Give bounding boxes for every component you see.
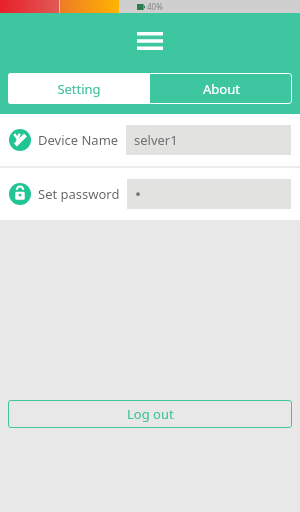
staticText: Device Name <box>38 131 119 149</box>
button[interactable]: Log out <box>8 400 292 428</box>
staticText: 40% <box>147 1 163 12</box>
button[interactable]: Setting <box>8 73 150 104</box>
staticText: selver1 <box>134 131 178 149</box>
staticText: About <box>203 80 240 98</box>
button[interactable]: selver1 <box>126 125 291 155</box>
button[interactable]: Set password <box>0 168 300 220</box>
staticText: Log out <box>127 405 174 423</box>
staticText: Set password <box>38 185 120 203</box>
button[interactable]: Device Name <box>0 114 300 166</box>
button[interactable]: Menu <box>130 21 170 61</box>
button[interactable] <box>127 179 291 209</box>
button[interactable]: About <box>150 73 292 104</box>
staticText: Setting <box>57 80 101 98</box>
